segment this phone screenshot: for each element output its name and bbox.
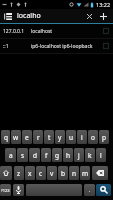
button[interactable]: h [63, 148, 73, 162]
button[interactable]: ::1 [0, 39, 113, 53]
button[interactable]: 127.0.0.1 [0, 24, 113, 38]
staticText: y [58, 133, 62, 142]
button[interactable]: y [55, 130, 65, 144]
button[interactable]: Shift [0, 166, 12, 180]
button[interactable]: a [5, 148, 16, 162]
button[interactable]: e [22, 130, 32, 144]
staticText: localho [17, 11, 41, 21]
staticText: x [28, 169, 32, 178]
button[interactable]: w [11, 130, 21, 144]
button[interactable]: n [69, 166, 79, 180]
staticText: p [102, 133, 106, 142]
button[interactable]: k [85, 148, 95, 162]
staticText: a [9, 151, 13, 160]
staticText: r [37, 133, 40, 142]
button[interactable]: t [44, 130, 54, 144]
staticText: e [25, 133, 29, 142]
button[interactable]: Search [96, 184, 111, 196]
staticText: q [4, 133, 8, 142]
staticText: m [82, 169, 89, 178]
button[interactable]: o [88, 130, 98, 144]
button[interactable]: Voice input [13, 184, 24, 196]
button[interactable]: Add [96, 9, 111, 23]
staticText: c [39, 169, 43, 178]
button[interactable]: ?123 [0, 184, 11, 196]
staticText: l [100, 151, 102, 160]
button[interactable]: p [99, 130, 109, 144]
button[interactable]: History [4, 9, 13, 23]
button[interactable]: v [47, 166, 57, 180]
button[interactable]: m [80, 166, 90, 180]
button[interactable]: l [96, 148, 106, 162]
button[interactable]: z [14, 166, 24, 180]
staticText: h [66, 151, 71, 160]
staticText: t [48, 133, 51, 142]
staticText: i [81, 133, 83, 142]
staticText: b [61, 169, 65, 178]
staticText: s [21, 151, 25, 160]
button[interactable]: q [1, 130, 10, 144]
staticText: u [69, 133, 74, 142]
button[interactable]: g [52, 148, 62, 162]
button[interactable]: Clear [82, 9, 96, 23]
button[interactable]: c [36, 166, 46, 180]
button[interactable]: d [29, 148, 40, 162]
button[interactable]: . [84, 184, 95, 196]
staticText: localhost [31, 28, 53, 35]
staticText: 13:22 [96, 1, 111, 8]
button[interactable]: i [77, 130, 87, 144]
staticText: 127.0.0.1 [3, 28, 25, 35]
staticText: z [17, 169, 21, 178]
button[interactable]: j [74, 148, 84, 162]
button[interactable] [26, 184, 82, 196]
staticText: n [72, 169, 77, 178]
staticText: . [89, 187, 91, 194]
staticText: ?123 [1, 188, 10, 193]
staticText: d [33, 151, 37, 160]
staticText: j [78, 151, 80, 160]
staticText: ::1 [3, 43, 9, 50]
staticText: g [55, 151, 59, 160]
staticText: w [13, 133, 19, 142]
button[interactable]: s [17, 148, 28, 162]
button[interactable]: Backspace [92, 166, 108, 180]
staticText: k [88, 151, 92, 160]
button[interactable]: r [33, 130, 43, 144]
button[interactable]: u [66, 130, 76, 144]
staticText: ip6-localhost ip6-loopback [31, 43, 93, 50]
button[interactable]: x [25, 166, 35, 180]
staticText: v [50, 169, 54, 178]
button[interactable]: Copy [100, 24, 111, 38]
button[interactable]: b [58, 166, 68, 180]
button[interactable]: Copy [100, 39, 111, 53]
staticText: o [91, 133, 95, 142]
staticText: f [45, 151, 48, 160]
button[interactable]: f [41, 148, 51, 162]
